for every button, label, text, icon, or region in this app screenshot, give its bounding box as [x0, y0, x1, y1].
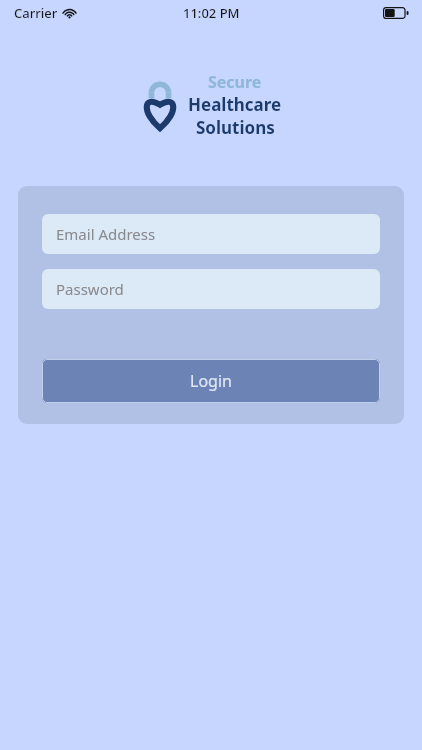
- staticText: Login: [190, 370, 232, 392]
- staticText: Solutions: [196, 116, 275, 139]
- staticText: 11:02 PM: [183, 4, 240, 22]
- button[interactable]: Email Address: [42, 214, 380, 254]
- staticText: Secure: [208, 71, 262, 93]
- button[interactable]: Login: [42, 359, 380, 403]
- staticText: Healthcare: [188, 93, 282, 116]
- staticText: Email Address: [56, 224, 156, 244]
- button[interactable]: Password: [42, 269, 380, 309]
- staticText: Carrier: [14, 4, 58, 22]
- staticText: Password: [56, 279, 124, 299]
